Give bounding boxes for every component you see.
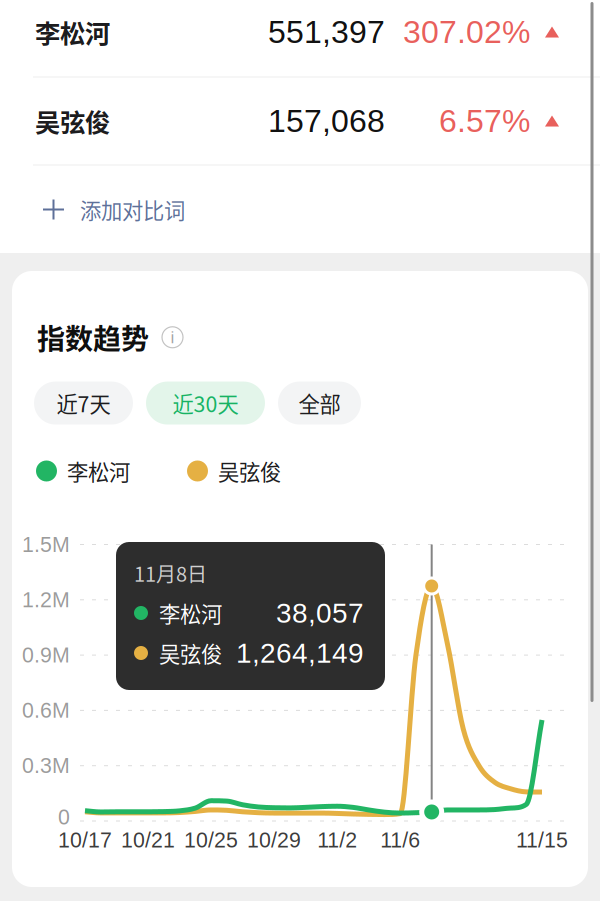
staticText: 近30天: [172, 388, 238, 418]
staticText: 1.5M: [22, 533, 70, 556]
staticText: 10/29: [247, 828, 301, 852]
staticText: 10/25: [184, 828, 238, 852]
staticText: 吴弦俊: [218, 455, 281, 486]
staticText: 李松河: [67, 455, 130, 486]
staticText: 157,068: [268, 103, 385, 139]
staticText: 0: [58, 805, 70, 829]
staticText: 551,397: [268, 14, 385, 50]
button[interactable]: 李松河: [0, 0, 600, 70]
staticText: 10/17: [58, 828, 112, 852]
staticText: 38,057: [276, 597, 364, 629]
staticText: 吴弦俊: [159, 638, 222, 668]
staticText: 11月8日: [134, 558, 207, 587]
staticText: 0.6M: [22, 698, 70, 722]
button[interactable]: 全部: [278, 381, 361, 424]
button[interactable]: 近7天: [34, 381, 133, 424]
staticText: 李松河: [35, 14, 110, 50]
button[interactable]: 添加对比词: [0, 165, 600, 253]
staticText: 11/6: [380, 828, 420, 852]
staticText: 1.2M: [22, 588, 70, 612]
staticText: 10/21: [121, 828, 175, 852]
staticText: 李松河: [159, 598, 222, 628]
staticText: 0.3M: [22, 754, 70, 778]
staticText: 307.02%: [403, 14, 530, 50]
staticText: 0.9M: [22, 643, 70, 667]
staticText: i: [170, 328, 174, 347]
staticText: 指数趋势: [37, 317, 149, 357]
staticText: 6.57%: [439, 103, 530, 139]
staticText: 全部: [298, 388, 340, 418]
staticText: 11/15: [516, 828, 568, 852]
button[interactable]: 吴弦俊: [0, 77, 600, 164]
button[interactable]: 近30天: [146, 381, 265, 424]
staticText: 近7天: [56, 388, 110, 418]
staticText: 1,264,149: [236, 637, 364, 669]
staticText: 添加对比词: [80, 194, 185, 225]
staticText: 11/2: [317, 828, 357, 852]
staticText: 吴弦俊: [35, 103, 110, 139]
